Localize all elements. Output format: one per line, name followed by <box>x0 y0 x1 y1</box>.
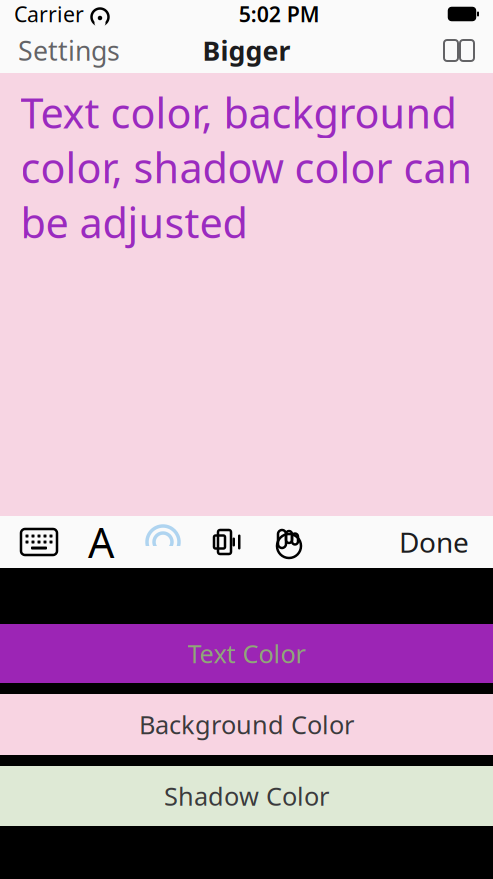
button[interactable]: Text Color <box>0 624 493 683</box>
button[interactable]: Gestures <box>256 516 318 568</box>
button[interactable]: Speak <box>194 516 256 568</box>
staticText: Carrier <box>14 0 84 28</box>
staticText: 5:02 PM <box>239 0 320 28</box>
staticText: Text Color <box>187 637 305 670</box>
staticText: Done <box>399 523 469 561</box>
button[interactable]: Library <box>425 31 493 69</box>
button[interactable]: Colors <box>132 516 194 568</box>
staticText: Settings <box>18 33 120 68</box>
button[interactable]: Settings <box>0 25 138 76</box>
staticText: Background Color <box>139 708 354 741</box>
button[interactable]: Keyboard <box>8 516 70 568</box>
button[interactable]: Font <box>70 516 132 568</box>
button[interactable]: Background Color <box>0 694 493 755</box>
button[interactable]: Done <box>381 516 487 568</box>
staticText: Shadow Color <box>164 779 329 813</box>
button[interactable]: Shadow Color <box>0 766 493 826</box>
staticText: Bigger <box>202 33 290 68</box>
staticText: A <box>88 515 114 569</box>
staticText: Text color, background color, shadow col… <box>20 85 472 250</box>
